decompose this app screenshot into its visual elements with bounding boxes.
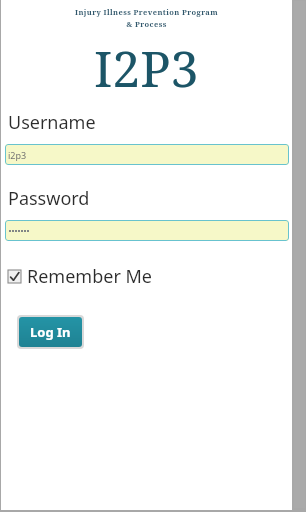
other: Remember Me checkbox, checked (8, 270, 21, 283)
staticText: Remember Me (27, 264, 152, 289)
staticText: & Process (1, 19, 292, 29)
staticText: Password (8, 186, 90, 211)
staticText: i2p3 (8, 149, 27, 161)
button[interactable]: i2p3 (5, 144, 289, 165)
button[interactable]: Remember Me checkbox, checked (8, 264, 152, 289)
staticText: Log In (30, 323, 71, 341)
staticText: I2P3 (94, 34, 199, 102)
staticText: Username (8, 110, 96, 135)
button[interactable] (5, 220, 289, 241)
button[interactable]: Log In (19, 317, 82, 347)
staticText: Injury Illness Prevention Program (1, 7, 292, 17)
